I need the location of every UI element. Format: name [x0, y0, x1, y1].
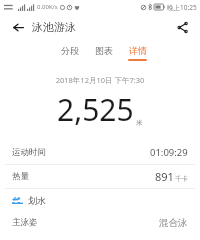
button[interactable]: Share	[173, 18, 191, 36]
staticText: 01:09:29	[150, 146, 188, 159]
staticText: 晚上10:25	[167, 3, 197, 12]
staticText: 图表	[95, 45, 113, 56]
button[interactable]: 运动时间	[0, 141, 200, 164]
staticText: 2018年12月10日 下午7:30	[0, 75, 200, 85]
staticText: 米	[136, 119, 143, 127]
button[interactable]: 详情	[127, 43, 148, 63]
staticText: 0.00K/s	[37, 3, 58, 11]
staticText: 2,525	[57, 89, 134, 130]
staticText: 划水	[28, 195, 46, 206]
staticText: 混合泳	[159, 217, 188, 229]
staticText: 891	[155, 169, 174, 184]
button[interactable]: 主泳姿	[0, 211, 200, 234]
staticText: 详情	[129, 45, 147, 56]
staticText: 热量	[12, 171, 29, 182]
button[interactable]: 分段	[60, 43, 80, 63]
staticText: 千卡	[175, 175, 188, 183]
staticText: 运动时间	[12, 147, 46, 158]
staticText: 主泳姿	[12, 217, 38, 228]
staticText: 泳池游泳	[32, 20, 76, 34]
button[interactable]: 热量	[0, 165, 200, 188]
button[interactable]: Back	[9, 18, 27, 36]
staticText: 分段	[61, 45, 79, 56]
button[interactable]: 图表	[94, 43, 114, 63]
